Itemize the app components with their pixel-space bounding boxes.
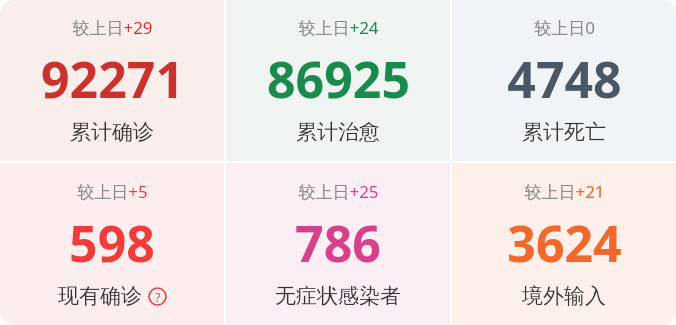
staticText: 786 — [295, 209, 381, 277]
staticText: 598 — [69, 209, 155, 277]
staticText: 4748 — [507, 45, 622, 113]
staticText: 较上日+29 — [72, 16, 153, 39]
staticText: 境外输入 — [522, 283, 606, 309]
staticText: 现有确诊 — [58, 283, 142, 309]
staticText: 较上日+21 — [524, 180, 605, 203]
staticText: 无症状感染者 — [275, 283, 401, 309]
staticText: 累计死亡 — [522, 119, 606, 145]
button[interactable]: 说明 — [148, 287, 167, 306]
button[interactable]: 较上日0 — [452, 0, 676, 161]
button[interactable]: 较上日+24 — [226, 0, 450, 161]
staticText: 较上日+5 — [77, 180, 148, 203]
staticText: 92271 — [41, 45, 184, 113]
staticText: 3624 — [507, 209, 622, 277]
button[interactable]: 较上日+5 — [0, 163, 224, 325]
staticText: 较上日+24 — [298, 16, 379, 39]
button[interactable]: 较上日+25 — [226, 163, 450, 325]
staticText: 较上日+25 — [298, 180, 379, 203]
staticText: 累计治愈 — [296, 119, 380, 145]
staticText: 较上日0 — [534, 16, 595, 39]
button[interactable]: 较上日+29 — [0, 0, 224, 161]
staticText: 86925 — [267, 45, 410, 113]
staticText: ? — [155, 288, 161, 306]
button[interactable]: 较上日+21 — [452, 163, 676, 325]
staticText: 累计确诊 — [70, 119, 154, 145]
